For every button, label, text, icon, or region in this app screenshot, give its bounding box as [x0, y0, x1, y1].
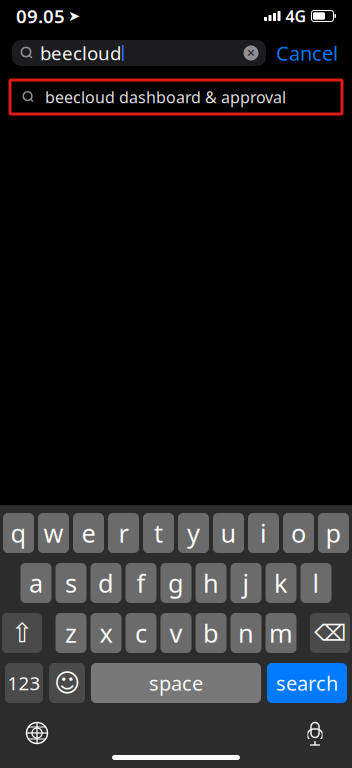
staticText: b: [203, 616, 219, 650]
staticText: ⇧: [11, 618, 33, 648]
staticText: search: [276, 670, 338, 696]
button[interactable]: r: [108, 513, 139, 553]
staticText: i: [260, 516, 267, 550]
staticText: space: [149, 670, 203, 696]
button[interactable]: t: [143, 513, 174, 553]
staticText: d: [98, 566, 114, 600]
button[interactable]: w: [38, 513, 69, 553]
staticText: x: [99, 616, 112, 650]
button[interactable]: o: [283, 513, 314, 553]
staticText: beecloud dashboard & approval: [45, 86, 286, 108]
staticText: Cancel: [276, 40, 338, 66]
staticText: l: [312, 566, 319, 600]
button[interactable]: n: [230, 613, 261, 653]
staticText: e: [81, 516, 95, 550]
button[interactable]: e: [73, 513, 104, 553]
button[interactable]: search: [267, 663, 347, 703]
staticText: j: [242, 566, 249, 600]
staticText: k: [274, 566, 288, 600]
staticText: p: [325, 516, 341, 550]
button[interactable]: Shift: [2, 613, 42, 653]
staticText: v: [169, 616, 182, 650]
staticText: ➤: [68, 8, 80, 24]
button[interactable]: s: [55, 563, 86, 603]
button[interactable]: Clear text: [238, 40, 264, 66]
button[interactable]: Next keyboard: [15, 711, 59, 755]
staticText: y: [187, 516, 200, 550]
button[interactable]: beecloud dashboard & approval: [10, 80, 342, 114]
button[interactable]: u: [213, 513, 244, 553]
button[interactable]: g: [160, 563, 191, 603]
button[interactable]: b: [195, 613, 226, 653]
button[interactable]: p: [318, 513, 349, 553]
staticText: t: [154, 516, 163, 550]
button[interactable]: k: [265, 563, 296, 603]
staticText: r: [118, 516, 128, 550]
staticText: 09.05: [16, 4, 65, 28]
button[interactable]: h: [195, 563, 226, 603]
staticText: u: [220, 516, 236, 550]
staticText: m: [269, 616, 293, 650]
button[interactable]: Emoji: [49, 663, 85, 703]
staticText: z: [65, 616, 77, 650]
staticText: n: [238, 616, 254, 650]
button[interactable]: 123: [5, 663, 43, 703]
button[interactable]: d: [90, 563, 121, 603]
button[interactable]: Delete: [310, 613, 350, 653]
staticText: o: [291, 516, 306, 550]
button[interactable]: x: [90, 613, 121, 653]
button[interactable]: v: [160, 613, 191, 653]
button[interactable]: j: [230, 563, 261, 603]
button[interactable]: q: [3, 513, 34, 553]
button[interactable]: a: [20, 563, 51, 603]
staticText: ⌫: [314, 620, 346, 646]
button[interactable]: m: [265, 613, 296, 653]
staticText: a: [29, 566, 43, 600]
staticText: ✕: [246, 47, 255, 59]
button[interactable]: f: [125, 563, 156, 603]
button[interactable]: Cancel: [266, 38, 348, 68]
staticText: h: [203, 566, 219, 600]
button[interactable]: l: [300, 563, 331, 603]
staticText: s: [65, 566, 77, 600]
staticText: 123: [7, 671, 40, 695]
staticText: q: [10, 516, 26, 550]
button[interactable]: y: [178, 513, 209, 553]
staticText: w: [43, 516, 63, 550]
button[interactable]: space: [91, 663, 261, 703]
button[interactable]: Dictation: [293, 711, 337, 755]
staticText: c: [135, 616, 147, 650]
staticText: g: [168, 566, 184, 600]
staticText: f: [136, 566, 145, 600]
button[interactable]: c: [125, 613, 156, 653]
staticText: ☺: [54, 669, 80, 697]
staticText: beecloud: [40, 41, 121, 65]
button[interactable]: i: [248, 513, 279, 553]
staticText: 4G: [285, 5, 306, 27]
button[interactable]: z: [55, 613, 86, 653]
